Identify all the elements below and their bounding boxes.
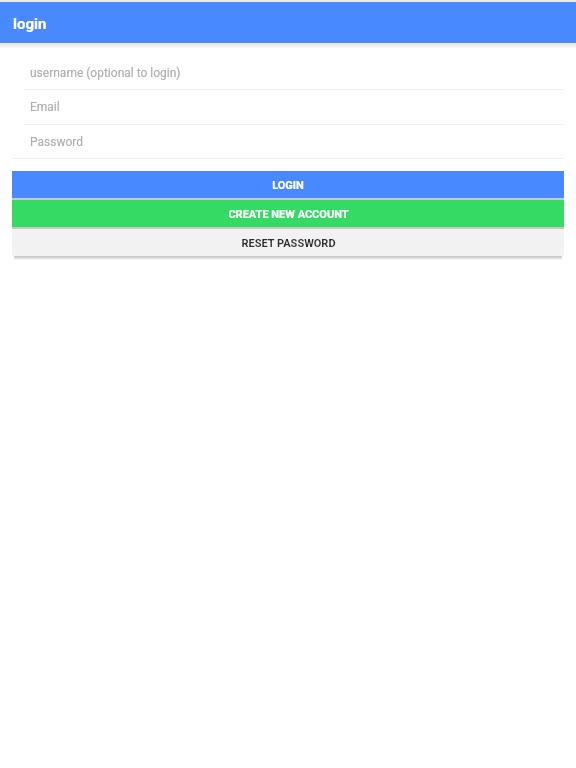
staticText: login — [13, 15, 47, 33]
staticText: Password — [30, 135, 84, 149]
staticText: CREATE NEW ACCOUNT — [228, 208, 349, 221]
button[interactable]: Password — [0, 125, 576, 159]
staticText: username (optional to login) — [30, 66, 181, 80]
staticText: LOGIN — [272, 179, 304, 192]
button[interactable]: LOGIN — [12, 171, 564, 198]
button[interactable]: CREATE NEW ACCOUNT — [12, 200, 564, 227]
staticText: Email — [30, 100, 60, 114]
button[interactable]: username (optional to login) — [0, 49, 576, 90]
button[interactable]: Email — [0, 90, 576, 125]
other: login — [0, 2, 576, 43]
button[interactable]: RESET PASSWORD — [12, 229, 564, 256]
staticText: RESET PASSWORD — [241, 237, 336, 250]
